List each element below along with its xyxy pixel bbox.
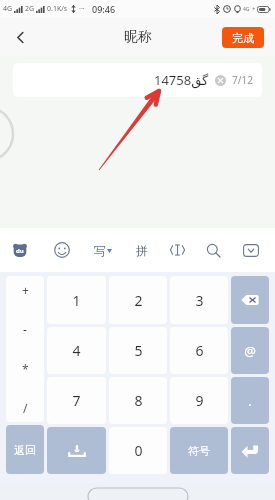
button[interactable]: 完成 (222, 27, 264, 48)
button[interactable]: 7 (47, 377, 106, 424)
button[interactable]: @ (231, 327, 269, 374)
button[interactable]: 5 (109, 327, 167, 374)
staticText: 2 (134, 291, 143, 310)
button[interactable]: 8 (109, 377, 167, 424)
button[interactable]: 符号 (170, 427, 228, 474)
staticText: - (23, 321, 27, 337)
staticText: 5 (134, 341, 143, 360)
staticText: @ (244, 342, 256, 360)
button[interactable]: 9 (170, 377, 228, 424)
button[interactable]: Clear text (215, 75, 226, 86)
button[interactable]: Search (198, 235, 228, 265)
button[interactable]: Back (0, 18, 40, 56)
button[interactable]: . (231, 377, 269, 424)
button[interactable]: 4 (47, 327, 106, 374)
staticText: du (16, 247, 24, 255)
staticText: گق14758 (154, 71, 209, 89)
staticText: 返回 (14, 443, 36, 457)
button[interactable]: 3 (170, 276, 228, 324)
button[interactable]: 6 (170, 327, 228, 374)
staticText: 符号 (188, 444, 210, 458)
staticText: 4 (72, 341, 81, 360)
other: Keyboard settings (13, 243, 27, 257)
staticText: 09:46 (92, 3, 116, 15)
button[interactable]: Emoji (47, 235, 77, 265)
staticText: 拼 (136, 243, 148, 258)
staticText: ··· (79, 4, 85, 14)
staticText: * (22, 361, 29, 377)
staticText: 7/12 (232, 73, 253, 87)
staticText: 3 (195, 291, 204, 310)
staticText: + (22, 282, 29, 298)
button[interactable]: 写 (88, 235, 118, 265)
staticText: 9 (195, 391, 204, 410)
staticText: 完成 (232, 31, 254, 45)
staticText: . (248, 392, 252, 410)
other: Search (206, 243, 221, 258)
staticText: 6 (195, 341, 204, 360)
staticText: 0.1K/s (47, 4, 68, 14)
staticText: 2G (25, 4, 35, 14)
button[interactable]: Backspace (231, 276, 269, 324)
staticText: / (23, 400, 28, 416)
other: Hide keyboard (243, 244, 259, 257)
staticText: 写 (94, 243, 106, 258)
staticText: 4G (3, 4, 13, 14)
button[interactable]: Enter (231, 427, 269, 474)
button[interactable]: 2 (109, 276, 167, 324)
button[interactable]: گق14758 (13, 63, 262, 97)
staticText: 1 (72, 291, 81, 310)
staticText: + (252, 5, 256, 13)
button[interactable]: Keyboard settings (5, 235, 35, 265)
staticText: 4G (243, 6, 250, 13)
staticText: 0 (134, 441, 143, 460)
button[interactable]: 0 (109, 427, 167, 474)
staticText: 7 (72, 391, 81, 410)
button[interactable]: Move cursor (162, 235, 192, 265)
button[interactable]: + (6, 276, 44, 422)
staticText: 昵称 (124, 28, 152, 46)
other: Emoji (54, 242, 70, 258)
button[interactable]: Voice input (47, 427, 106, 474)
button[interactable]: 1 (47, 276, 106, 324)
staticText: 8 (134, 391, 143, 410)
other: Move cursor (170, 244, 185, 256)
button[interactable]: Hide keyboard (236, 235, 266, 265)
button[interactable]: 返回 (6, 425, 44, 474)
button[interactable]: 拼 (127, 235, 157, 265)
